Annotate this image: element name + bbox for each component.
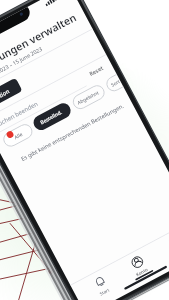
- button[interactable]: Bestellungen verwalten app preview: [0, 0, 169, 300]
